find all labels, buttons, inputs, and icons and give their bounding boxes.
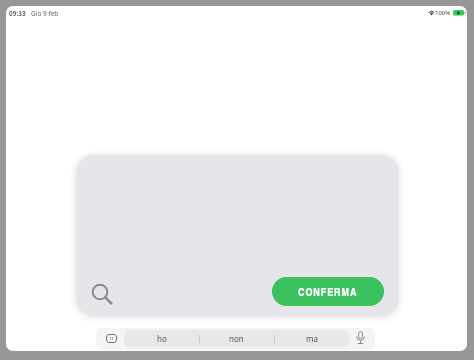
staticText: non	[229, 333, 244, 344]
button[interactable]	[355, 331, 366, 345]
staticText: Gio 9 feb	[31, 9, 59, 18]
staticText: CONFERMA	[298, 284, 358, 300]
button[interactable]	[77, 155, 398, 315]
staticText: ma	[306, 333, 318, 344]
staticText: ho	[157, 333, 167, 344]
button[interactable]: non	[199, 330, 274, 347]
staticText: 09:33	[9, 9, 26, 18]
staticText: IT	[110, 336, 114, 341]
staticText: 100%	[435, 9, 451, 17]
button[interactable]: ho	[124, 330, 199, 347]
button[interactable]: ma	[274, 330, 349, 347]
button[interactable]: IT	[106, 334, 117, 343]
button[interactable]: CONFERMA	[272, 277, 384, 306]
